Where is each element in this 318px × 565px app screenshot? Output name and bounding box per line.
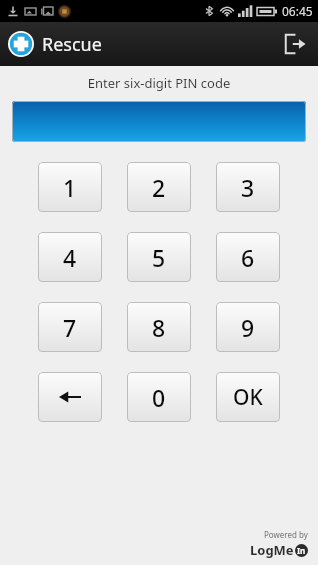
button[interactable]: 2	[127, 162, 191, 212]
staticText: 2	[152, 172, 166, 203]
staticText: LogMe	[250, 541, 294, 559]
button[interactable]	[12, 101, 306, 142]
button[interactable]: OK	[216, 372, 280, 422]
button[interactable]: 1	[38, 162, 102, 212]
staticText: 06:45	[282, 3, 313, 19]
button[interactable]: Log out	[272, 22, 318, 66]
staticText: 4	[63, 242, 77, 273]
staticText: Enter six-digit PIN code	[0, 74, 318, 92]
staticText: 1	[63, 172, 77, 203]
button[interactable]: 6	[216, 232, 280, 282]
button[interactable]: 0	[127, 372, 191, 422]
button[interactable]: 9	[216, 302, 280, 352]
button[interactable]: Backspace	[38, 372, 102, 422]
button[interactable]: 7	[38, 302, 102, 352]
staticText: OK	[233, 383, 263, 412]
staticText: 3	[241, 172, 255, 203]
button[interactable]: 8	[127, 302, 191, 352]
staticText: 0	[152, 382, 166, 413]
button[interactable]: 5	[127, 232, 191, 282]
staticText: 8	[152, 312, 166, 343]
button[interactable]: 3	[216, 162, 280, 212]
staticText: In	[297, 545, 306, 556]
staticText: 9	[241, 312, 255, 343]
button[interactable]: 4	[38, 232, 102, 282]
staticText: 5	[152, 242, 166, 273]
staticText: Rescue	[42, 32, 102, 57]
staticText: 7	[63, 312, 77, 343]
staticText: Powered by	[264, 529, 308, 540]
staticText: 6	[241, 242, 255, 273]
